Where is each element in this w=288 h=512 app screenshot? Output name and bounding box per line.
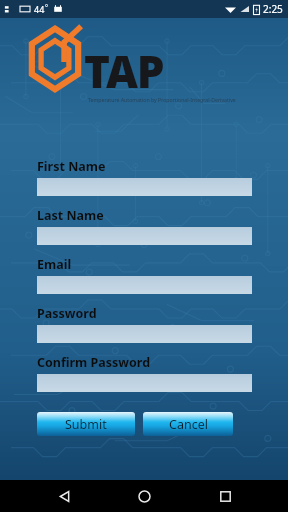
- button[interactable]: Submit: [37, 412, 135, 436]
- staticText: 2:25: [263, 2, 283, 16]
- staticText: TAP: [84, 41, 164, 101]
- button[interactable]: [37, 325, 252, 343]
- staticText: Confirm Password: [37, 354, 151, 371]
- button[interactable]: Recent apps: [208, 480, 242, 512]
- button[interactable]: [37, 374, 252, 392]
- staticText: Password: [37, 305, 97, 322]
- staticText: Temperature Automation by Proportional-I…: [88, 96, 236, 103]
- staticText: 44: [34, 3, 45, 15]
- button[interactable]: [37, 227, 252, 245]
- button[interactable]: Back: [47, 480, 81, 512]
- staticText: First Name: [37, 158, 106, 175]
- staticText: °: [45, 3, 48, 13]
- button[interactable]: [37, 178, 252, 196]
- button[interactable]: Cancel: [143, 412, 233, 436]
- staticText: Cancel: [169, 416, 208, 433]
- button[interactable]: [37, 276, 252, 294]
- staticText: Submit: [65, 416, 107, 433]
- staticText: Email: [37, 256, 72, 273]
- staticText: Last Name: [37, 207, 104, 224]
- button[interactable]: Home: [127, 480, 161, 512]
